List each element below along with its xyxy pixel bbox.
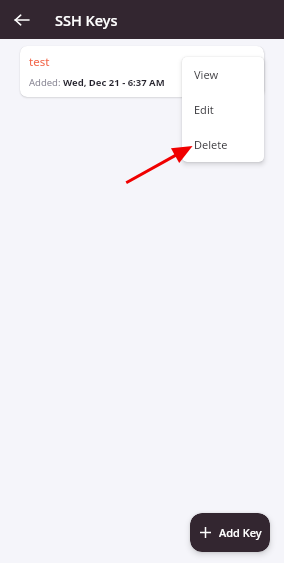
button[interactable]: View [182, 57, 264, 92]
button[interactable]: Add Key [190, 513, 270, 552]
staticText: Edit [194, 102, 214, 117]
staticText: View [194, 67, 219, 82]
staticText: SSH Keys [55, 10, 118, 30]
staticText: Added: Wed, Dec 21 - 6:37 AM [29, 76, 165, 89]
button[interactable]: Back [8, 6, 36, 34]
button[interactable]: Delete [182, 127, 264, 162]
staticText: Add Key [219, 525, 262, 540]
button[interactable]: Edit [182, 92, 264, 127]
staticText: Delete [194, 137, 228, 152]
staticText: test [29, 54, 50, 70]
button[interactable]: test [20, 46, 264, 97]
